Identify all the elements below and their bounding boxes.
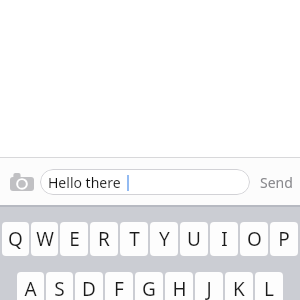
staticText: K [233, 276, 245, 300]
button[interactable]: O [240, 222, 268, 256]
button[interactable]: W [31, 222, 58, 256]
staticText: Y [159, 226, 170, 252]
staticText: S [54, 276, 65, 300]
button[interactable]: Hello there [40, 169, 250, 195]
staticText: R [98, 226, 110, 252]
staticText: I [221, 226, 228, 252]
button[interactable]: U [180, 222, 208, 256]
staticText: U [187, 226, 201, 252]
button[interactable]: F [105, 272, 133, 300]
staticText: Send [260, 173, 293, 192]
staticText: O [247, 226, 262, 252]
button[interactable]: A [17, 272, 44, 300]
button[interactable]: Send [252, 160, 300, 204]
staticText: P [278, 226, 290, 252]
button[interactable]: T [120, 222, 148, 256]
button[interactable]: K [225, 272, 253, 300]
staticText: Hello there [48, 173, 121, 192]
staticText: H [172, 276, 187, 300]
staticText: J [206, 276, 212, 300]
staticText: A [24, 276, 37, 300]
staticText: T [129, 226, 140, 252]
staticText: F [114, 276, 124, 300]
button[interactable]: L [255, 272, 283, 300]
button[interactable]: H [165, 272, 193, 300]
button[interactable]: P [270, 222, 298, 256]
button[interactable]: G [135, 272, 163, 300]
staticText: Q [8, 226, 23, 252]
staticText: D [82, 276, 96, 300]
button[interactable]: R [90, 222, 118, 256]
staticText: G [142, 276, 156, 300]
staticText: L [264, 276, 274, 300]
button[interactable]: Take photo [5, 165, 39, 199]
button[interactable]: Q [2, 222, 29, 256]
button[interactable]: E [60, 222, 88, 256]
button[interactable]: J [195, 272, 223, 300]
button[interactable]: D [75, 272, 103, 300]
button[interactable]: I [210, 222, 238, 256]
button[interactable]: Y [150, 222, 178, 256]
button[interactable]: S [46, 272, 73, 300]
staticText: W [36, 226, 54, 252]
staticText: E [69, 226, 80, 252]
